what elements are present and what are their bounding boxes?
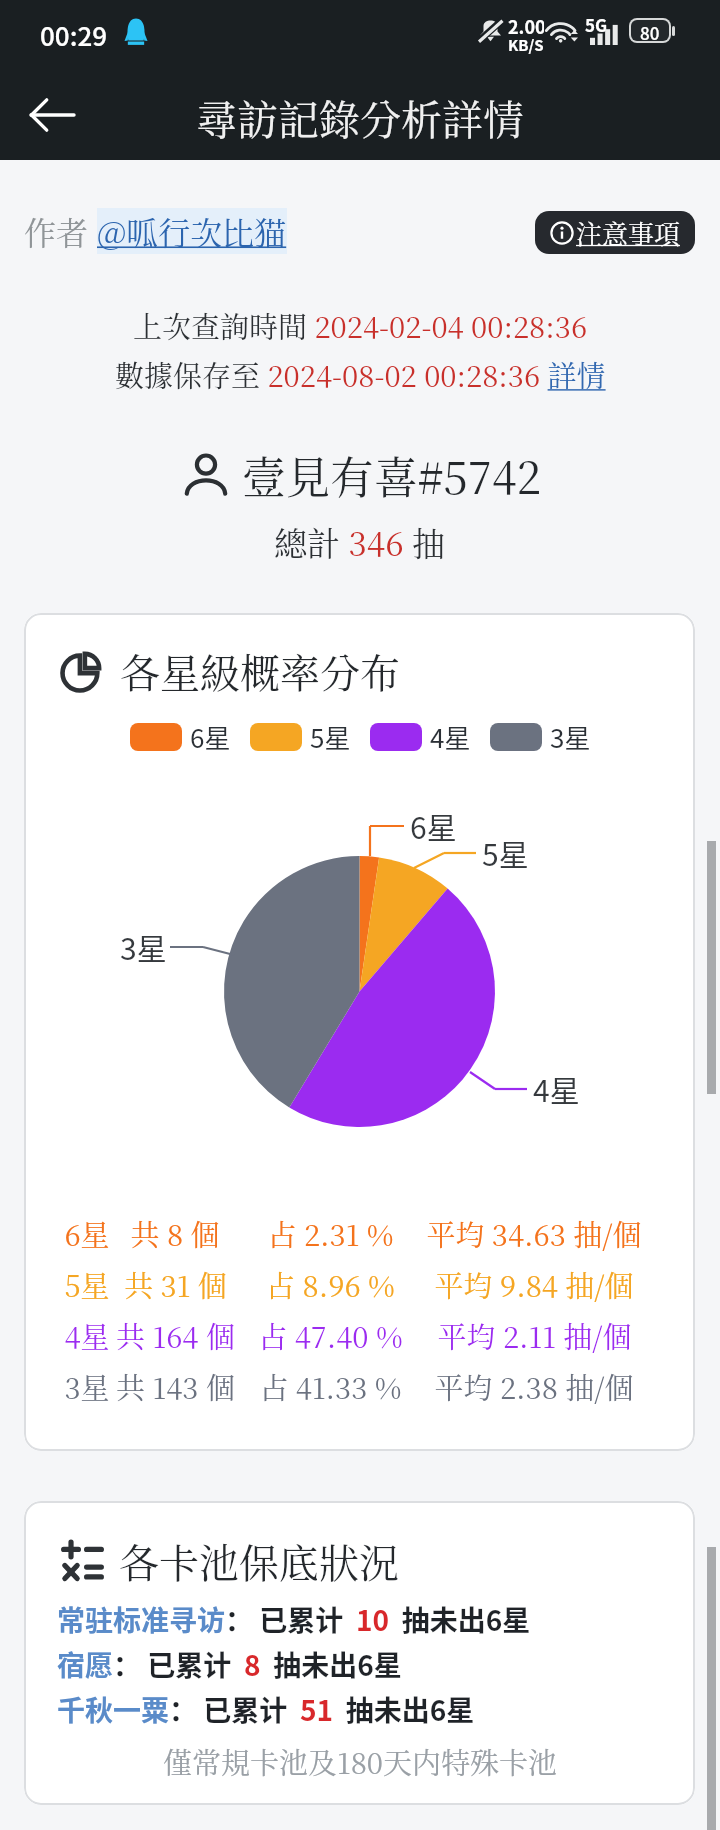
staticText: 4星 bbox=[533, 1067, 580, 1110]
staticText: 作者 bbox=[24, 208, 97, 254]
staticText: 占 8.96 % bbox=[266, 1264, 395, 1306]
staticText: 5星 bbox=[310, 718, 351, 756]
staticText: 注意事項 bbox=[576, 214, 681, 251]
staticText: 占 41.33 % bbox=[259, 1366, 402, 1408]
staticText: 宿愿： 已累计 8 抽未出6星 bbox=[57, 1644, 402, 1685]
staticText: 壹見有喜#5742 bbox=[242, 443, 541, 506]
staticText: 共 31 個 bbox=[124, 1264, 227, 1306]
staticText: 共 8 個 bbox=[130, 1213, 220, 1255]
staticText: 6星 bbox=[190, 718, 231, 756]
button[interactable]: 注意事項 bbox=[535, 211, 695, 254]
staticText: 00:29 bbox=[40, 16, 108, 54]
staticText: 各卡池保底狀況 bbox=[119, 1532, 399, 1589]
staticText: 5星 bbox=[64, 1264, 110, 1306]
staticText: 80 bbox=[640, 20, 660, 41]
staticText: 千秋一粟： 已累计 51 抽未出6星 bbox=[57, 1689, 475, 1730]
staticText: 常驻标准寻访： 已累计 10 抽未出6星 bbox=[57, 1599, 531, 1640]
staticText: 平均 9.84 抽/個 bbox=[434, 1264, 634, 1306]
staticText: 平均 2.11 抽/個 bbox=[437, 1315, 632, 1357]
staticText: 6星 bbox=[64, 1213, 110, 1255]
staticText: 尋訪記錄分析詳情 bbox=[196, 88, 524, 147]
staticText: 3星 bbox=[64, 1366, 110, 1408]
staticText: 共 164 個 bbox=[116, 1315, 235, 1357]
staticText: 平均 34.63 抽/個 bbox=[426, 1213, 642, 1255]
staticText: KB/S bbox=[508, 34, 544, 56]
button[interactable]: Back bbox=[14, 78, 90, 152]
staticText: 3星 bbox=[120, 925, 167, 968]
staticText: 各星級概率分布 bbox=[120, 642, 400, 699]
staticText: 共 143 個 bbox=[116, 1366, 235, 1408]
staticText: 總計 346 抽 bbox=[274, 518, 446, 565]
staticText: 5G bbox=[585, 12, 608, 37]
staticText: 2.00 bbox=[508, 13, 544, 39]
staticText: 4星 bbox=[430, 718, 471, 756]
staticText: 4星 bbox=[64, 1315, 110, 1357]
staticText: 占 47.40 % bbox=[258, 1315, 403, 1357]
staticText: 上次查詢時間 2024-02-04 00:28:36 bbox=[133, 305, 588, 347]
button[interactable]: @呱行次比猫 bbox=[97, 208, 287, 254]
staticText: @呱行次比猫 bbox=[97, 208, 287, 254]
staticText: 6星 bbox=[410, 804, 457, 847]
staticText: 5星 bbox=[482, 831, 529, 874]
staticText: 3星 bbox=[550, 718, 591, 756]
staticText: 平均 2.38 抽/個 bbox=[434, 1366, 634, 1408]
staticText: 占 2.31 % bbox=[267, 1213, 394, 1255]
staticText: 僅常規卡池及180天内特殊卡池 bbox=[163, 1741, 557, 1783]
staticText: 數據保存至 2024-08-02 00:28:36 詳情 bbox=[115, 354, 606, 396]
